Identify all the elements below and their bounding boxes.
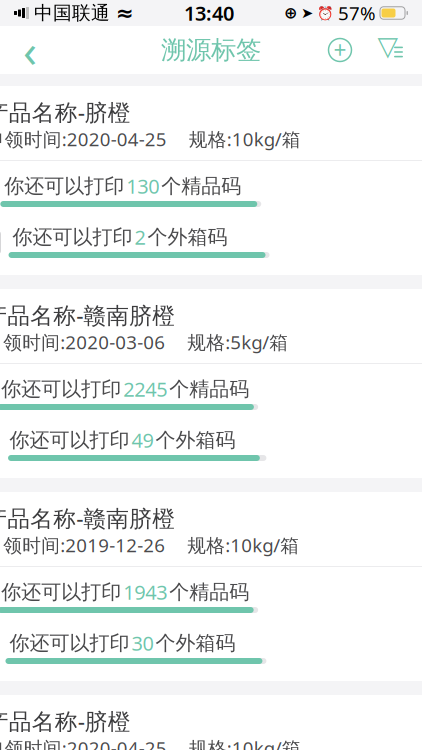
button[interactable]: 产品名称-脐橙 xyxy=(0,695,422,750)
button[interactable]: 产品名称-赣南脐橙 xyxy=(0,289,422,478)
staticText: 1943 xyxy=(123,579,167,605)
staticText: ➤ xyxy=(301,5,313,21)
staticText: 个精品码 xyxy=(161,174,241,198)
staticText: 申领时间:2019-12-26 xyxy=(0,533,165,557)
staticText: ‹ xyxy=(23,20,37,80)
staticText: 规格:10kg/箱 xyxy=(189,127,301,151)
staticText: 个精品码 xyxy=(169,580,249,604)
staticText: 产品名称-脐橙 xyxy=(0,706,131,736)
button[interactable]: 产品名称-脐橙 xyxy=(0,86,422,275)
staticText: 个外箱码 xyxy=(155,428,235,452)
staticText: 规格:5kg/箱 xyxy=(187,330,288,354)
staticText: 申领时间:2020-03-06 xyxy=(0,330,165,354)
staticText: 个外箱码 xyxy=(147,225,227,249)
button[interactable]: Filter xyxy=(370,28,414,72)
staticText: + xyxy=(333,35,346,65)
staticText: 你还可以打印 xyxy=(9,631,129,655)
staticText: 你还可以打印 xyxy=(12,225,132,249)
staticText: 2245 xyxy=(123,376,167,402)
staticText: 规格:10kg/箱 xyxy=(189,736,301,750)
staticText: 溯源标签 xyxy=(161,34,261,65)
staticText: 57% xyxy=(338,1,376,25)
staticText: 个精品码 xyxy=(169,377,249,401)
button[interactable]: 产品名称-赣南脐橙 xyxy=(0,492,422,681)
staticText: 你还可以打印 xyxy=(1,377,121,401)
button[interactable]: Add xyxy=(318,28,362,72)
staticText: ⊕ xyxy=(284,4,297,22)
staticText: 2 xyxy=(134,224,145,250)
staticText: 产品名称-脐橙 xyxy=(0,97,131,127)
staticText: 你还可以打印 xyxy=(1,580,121,604)
staticText: 你还可以打印 xyxy=(9,428,129,452)
staticText: 30 xyxy=(131,630,153,656)
staticText: 申领时间:2020-04-25 xyxy=(0,736,167,750)
staticText: 产品名称-赣南脐橙 xyxy=(0,300,175,330)
staticText: 申领时间:2020-04-25 xyxy=(0,127,167,151)
staticText: 中国联通 xyxy=(34,1,110,24)
staticText: 个外箱码 xyxy=(155,631,235,655)
button[interactable]: Back xyxy=(8,28,52,72)
staticText: 你还可以打印 xyxy=(4,174,124,198)
staticText: 49 xyxy=(131,427,153,453)
staticText: 130 xyxy=(126,173,159,199)
staticText: 产品名称-赣南脐橙 xyxy=(0,503,175,533)
staticText: ▽ xyxy=(377,31,398,61)
staticText: 13:40 xyxy=(184,0,234,26)
staticText: ≈ xyxy=(116,1,134,25)
staticText: 规格:10kg/箱 xyxy=(187,533,299,557)
staticText: ⏰ xyxy=(317,5,334,21)
